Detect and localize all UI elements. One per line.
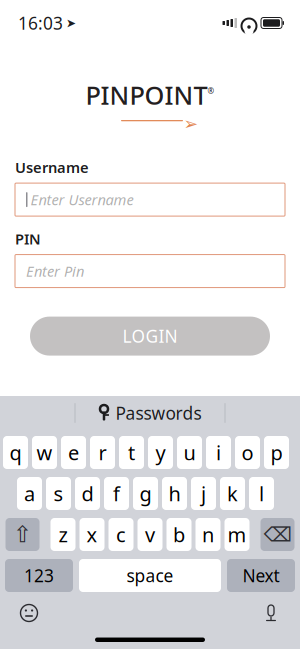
button[interactable]: Next <box>227 559 295 592</box>
staticText: d <box>81 480 93 507</box>
button[interactable]: y <box>148 436 173 469</box>
staticText: i <box>216 439 221 466</box>
staticText: ⇧ <box>13 522 32 547</box>
staticText: k <box>227 480 238 507</box>
staticText: ⌫ <box>263 523 291 546</box>
staticText: LOGIN <box>122 325 177 348</box>
button[interactable]: 123 <box>5 559 73 592</box>
staticText: ➢ <box>183 114 198 133</box>
staticText: Enter Username <box>30 190 133 209</box>
button[interactable]: p <box>264 436 289 469</box>
button[interactable]: j <box>191 477 216 510</box>
staticText: p <box>270 439 282 466</box>
staticText: 123 <box>24 564 54 587</box>
staticText: e <box>68 439 79 466</box>
button[interactable]: f <box>104 477 129 510</box>
button[interactable]: space <box>79 559 221 592</box>
staticText: r <box>98 439 106 466</box>
button[interactable]: h <box>162 477 187 510</box>
button[interactable]: u <box>177 436 202 469</box>
staticText: s <box>53 480 63 507</box>
button[interactable]: Delete <box>260 518 294 551</box>
button[interactable]: c <box>108 518 133 551</box>
staticText: t <box>128 439 135 466</box>
button[interactable]: m <box>224 518 249 551</box>
staticText: PIN <box>15 229 41 249</box>
staticText: c <box>116 521 126 548</box>
staticText: space <box>126 564 173 587</box>
staticText: a <box>24 480 35 507</box>
button[interactable]: z <box>50 518 75 551</box>
staticText: h <box>168 480 180 507</box>
button[interactable]: LOGIN <box>0 317 300 356</box>
staticText: ➤ <box>66 16 76 30</box>
staticText: v <box>145 521 155 548</box>
button[interactable]: x <box>79 518 104 551</box>
staticText: w <box>36 439 52 466</box>
button[interactable]: q <box>3 436 28 469</box>
button[interactable]: Passwords <box>90 398 209 428</box>
staticText: l <box>259 480 264 507</box>
staticText: n <box>202 521 214 548</box>
staticText: x <box>86 521 97 548</box>
button[interactable]: Emoji <box>14 598 44 628</box>
button[interactable]: a <box>17 477 42 510</box>
button[interactable]: l <box>249 477 274 510</box>
button[interactable]: n <box>195 518 220 551</box>
button[interactable]: s <box>46 477 71 510</box>
staticText: Enter Pin <box>26 261 84 281</box>
staticText: z <box>58 521 67 548</box>
staticText: o <box>241 439 253 466</box>
button[interactable]: d <box>75 477 100 510</box>
button[interactable]: i <box>206 436 231 469</box>
staticText: q <box>9 439 21 466</box>
button[interactable]: Dictation <box>256 598 286 628</box>
staticText: Passwords <box>115 401 201 424</box>
button[interactable]: w <box>32 436 57 469</box>
staticText: Next <box>242 564 279 587</box>
button[interactable]: r <box>90 436 115 469</box>
staticText: u <box>183 439 195 466</box>
button[interactable]: Shift <box>5 518 39 551</box>
staticText: ® <box>207 85 214 96</box>
button[interactable]: o <box>235 436 260 469</box>
button[interactable]: b <box>166 518 191 551</box>
staticText: b <box>173 521 185 548</box>
staticText: f <box>113 480 120 507</box>
button[interactable]: k <box>220 477 245 510</box>
staticText: Username <box>15 158 89 177</box>
staticText: 16:03 <box>18 11 63 34</box>
button[interactable]: g <box>133 477 158 510</box>
staticText: m <box>227 521 246 548</box>
staticText: j <box>201 480 206 507</box>
staticText: PINPOINT <box>85 78 207 112</box>
staticText: y <box>155 439 165 466</box>
button[interactable]: v <box>137 518 162 551</box>
button[interactable]: e <box>61 436 86 469</box>
button[interactable]: t <box>119 436 144 469</box>
staticText: g <box>139 480 151 507</box>
